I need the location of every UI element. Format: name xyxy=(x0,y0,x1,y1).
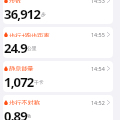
button[interactable]: 步数 xyxy=(3,0,113,24)
staticText: 36,912 xyxy=(4,5,41,23)
button[interactable]: 静息能量 xyxy=(3,61,113,92)
staticText: 步行+跑步距离 xyxy=(9,31,50,37)
staticText: % xyxy=(27,113,31,120)
staticText: 静息能量 xyxy=(9,65,34,71)
staticText: 14:52 xyxy=(91,99,105,105)
staticText: 1,072 xyxy=(4,73,34,91)
staticText: 14:55 xyxy=(91,31,105,37)
staticText: 千卡 xyxy=(34,79,44,85)
staticText: 14:54 xyxy=(91,65,105,71)
staticText: 步行不对称 xyxy=(9,99,40,105)
staticText: 步数 xyxy=(9,0,22,3)
button[interactable]: 步行不对称 xyxy=(3,95,113,120)
staticText: 步 xyxy=(41,11,46,17)
staticText: 公里 xyxy=(27,45,37,51)
staticText: 0.89 xyxy=(4,107,27,120)
staticText: 14:53 xyxy=(91,0,105,3)
staticText: 24.9 xyxy=(4,39,27,57)
button[interactable]: 步行+跑步距离 xyxy=(3,27,113,58)
